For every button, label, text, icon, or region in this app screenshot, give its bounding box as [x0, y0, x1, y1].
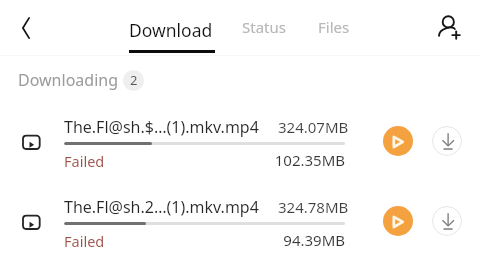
- button[interactable]: [0, 110, 370, 180]
- staticText: 102.35MB: [265, 150, 345, 170]
- staticText: Failed: [64, 231, 105, 251]
- button[interactable]: Back: [8, 9, 44, 46]
- button[interactable]: Resume download: [383, 206, 413, 236]
- staticText: 2: [130, 71, 138, 89]
- button[interactable]: Files: [310, 9, 358, 45]
- button[interactable]: Add user: [429, 9, 465, 45]
- staticText: 324.07MB: [278, 117, 349, 137]
- staticText: Failed: [64, 151, 105, 171]
- staticText: Download: [129, 18, 213, 42]
- button[interactable]: [0, 190, 370, 260]
- button[interactable]: Download: [432, 126, 462, 156]
- button[interactable]: Status: [234, 9, 294, 45]
- staticText: 324.78MB: [278, 197, 349, 217]
- staticText: The.Fl@sh.2…(1).mkv.mp4: [64, 196, 259, 218]
- staticText: Files: [318, 17, 350, 37]
- staticText: Status: [242, 17, 286, 37]
- staticText: Downloading: [18, 69, 118, 91]
- button[interactable]: Download: [432, 206, 462, 236]
- button[interactable]: Resume download: [383, 126, 413, 156]
- staticText: The.Fl@sh.$…(1).mkv.mp4: [64, 116, 259, 138]
- button[interactable]: Download: [121, 8, 221, 52]
- staticText: 94.39MB: [265, 230, 345, 250]
